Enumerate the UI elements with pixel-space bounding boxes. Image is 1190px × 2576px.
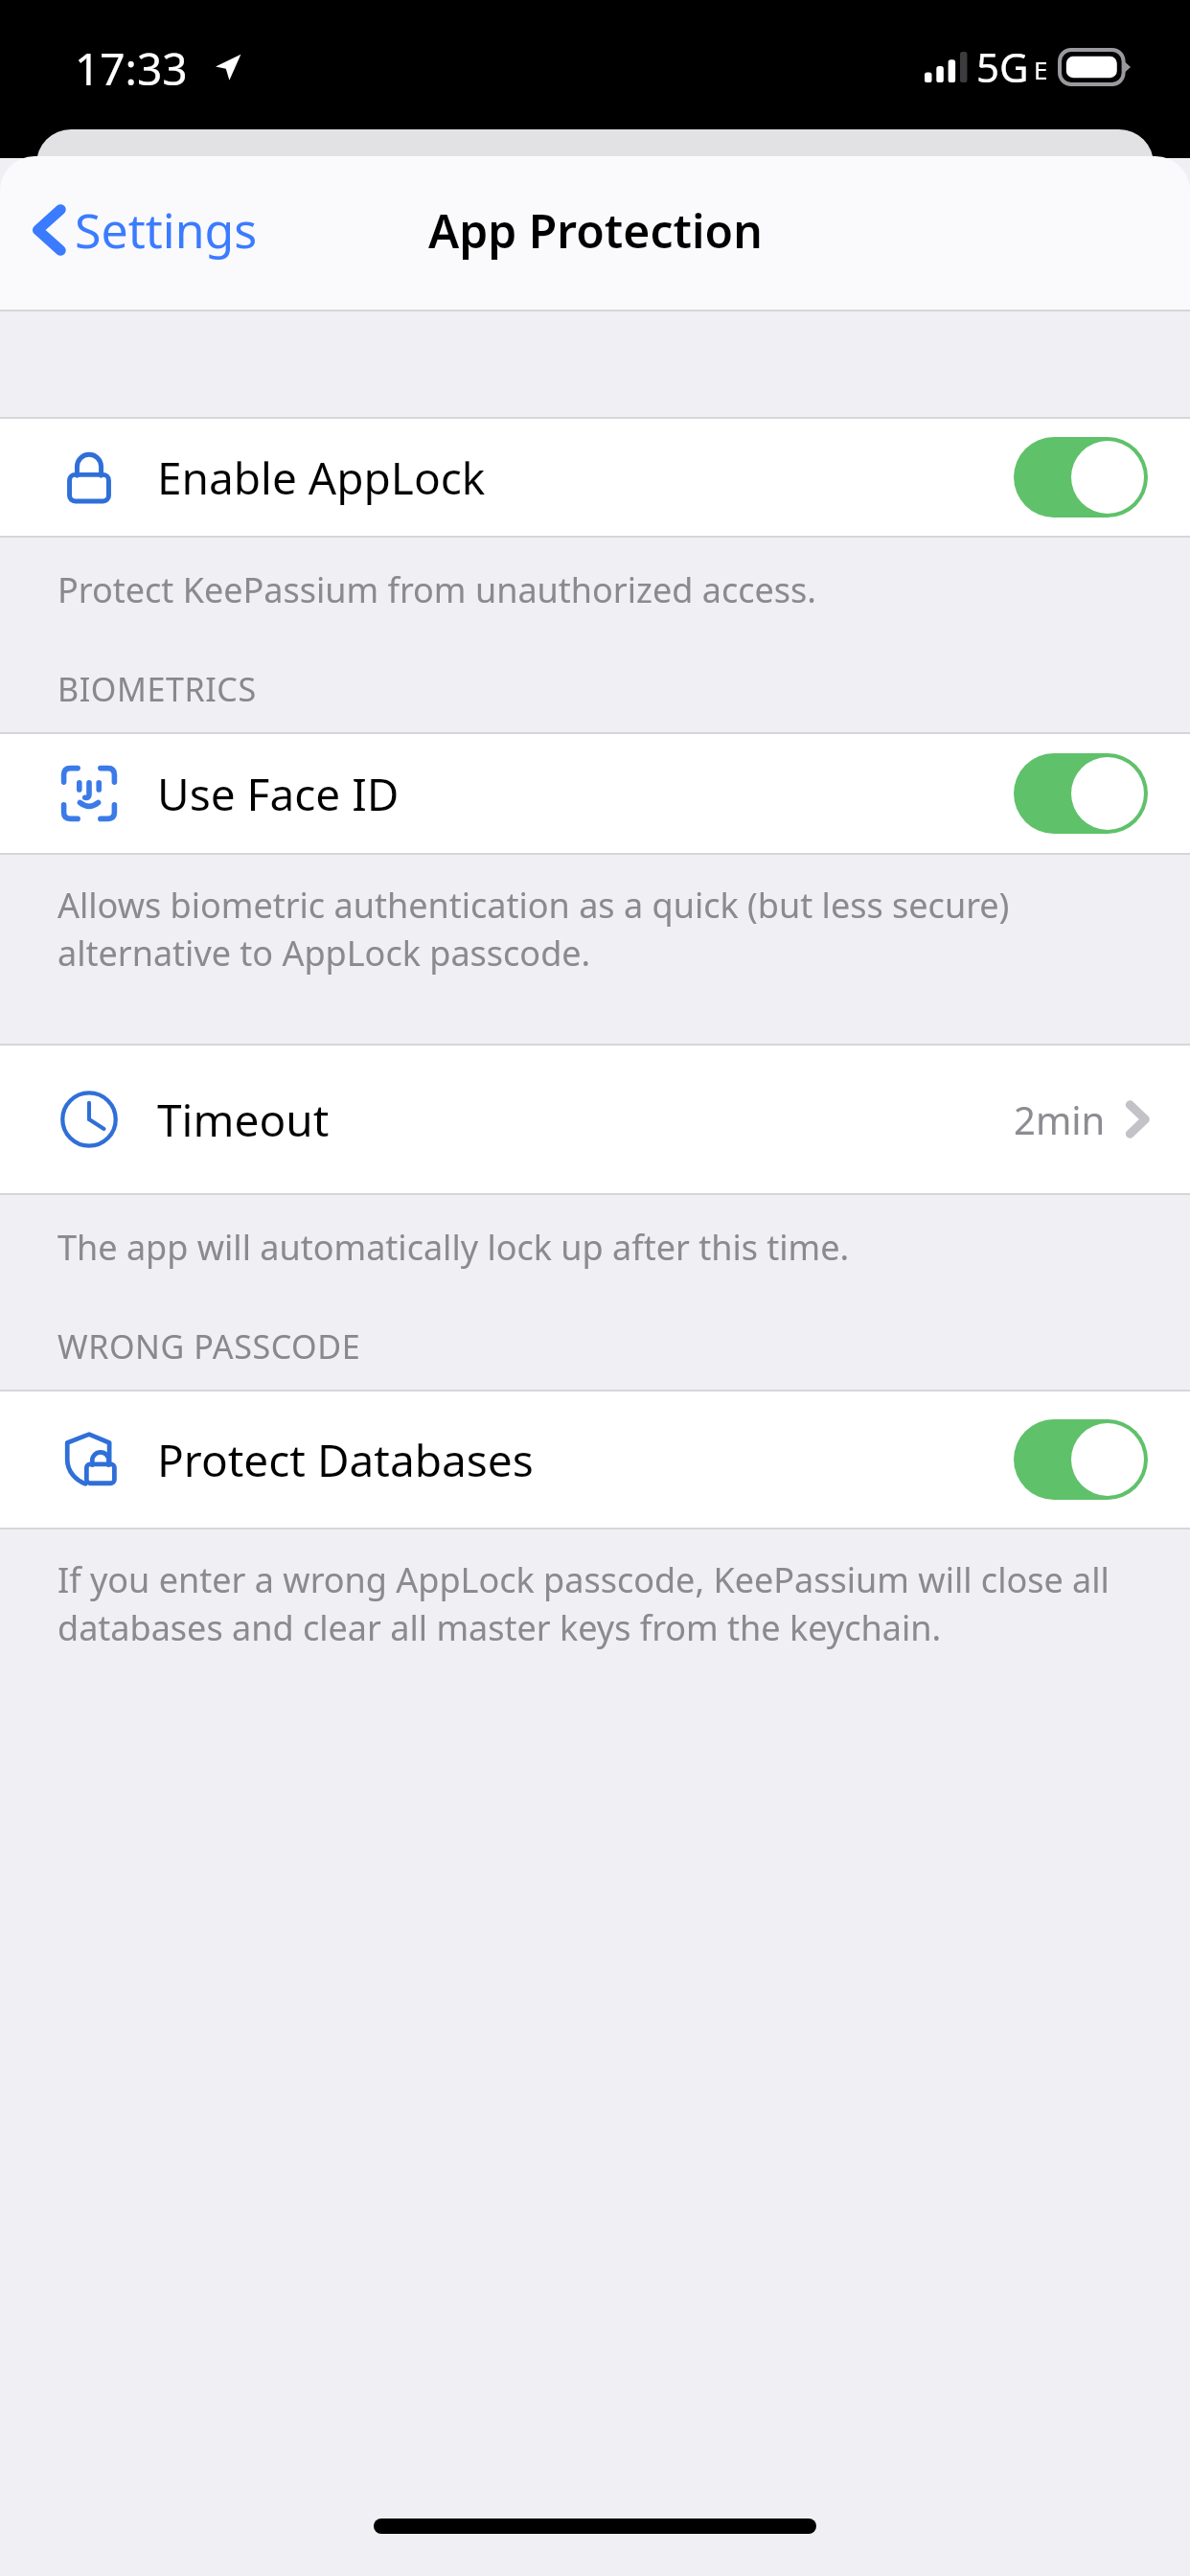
staticText: App Protection: [428, 199, 763, 262]
staticText: Protect Databases: [157, 1430, 534, 1490]
staticText: Use Face ID: [157, 764, 400, 824]
button[interactable]: Settings: [0, 184, 275, 276]
staticText: E: [1034, 53, 1048, 86]
staticText: Settings: [75, 197, 258, 263]
staticText: WRONG PASSCODE: [57, 1324, 361, 1368]
staticText: 2min: [1014, 1093, 1106, 1145]
staticText: BIOMETRICS: [57, 667, 257, 711]
button[interactable]: Protect Databases: [0, 1391, 1190, 1528]
staticText: Protect KeePassium from unauthorized acc…: [57, 566, 816, 613]
button[interactable]: Toggle: [1014, 1419, 1148, 1500]
staticText: If you enter a wrong AppLock passcode, K…: [57, 1556, 1110, 1651]
staticText: Allows biometric authentication as a qui…: [57, 882, 1010, 977]
button[interactable]: Use Face ID: [0, 734, 1190, 853]
staticText: Enable AppLock: [157, 448, 486, 508]
button[interactable]: Timeout: [0, 1046, 1190, 1193]
staticText: Timeout: [157, 1090, 330, 1150]
button[interactable]: Toggle: [1014, 437, 1148, 517]
staticText: The app will automatically lock up after…: [57, 1224, 850, 1271]
staticText: 17:33: [75, 38, 188, 99]
staticText: 5G: [976, 39, 1029, 94]
button[interactable]: Enable AppLock: [0, 419, 1190, 536]
button[interactable]: Toggle: [1014, 753, 1148, 834]
